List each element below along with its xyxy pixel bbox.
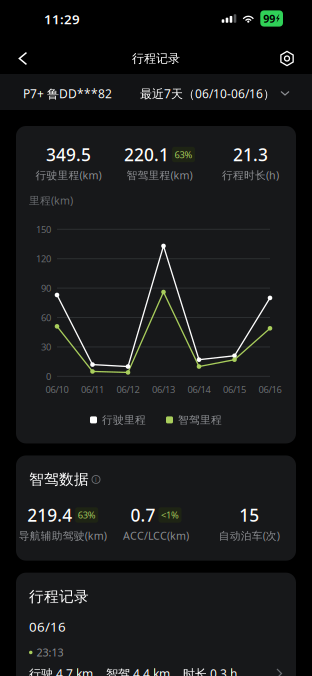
staticText: 行驶里程(km) [35,168,101,182]
staticText: 06/14 [187,383,210,396]
staticText: 06/16 [258,383,281,396]
staticText: 0 [46,370,51,383]
staticText: 63% [78,509,96,521]
staticText: 自动泊车(次) [219,528,280,543]
staticText: 06/15 [223,383,246,396]
staticText: 最近7天（06/10-06/16） [140,85,275,101]
button[interactable]: Settings [267,32,307,77]
staticText: 智驾里程(km) [126,168,192,182]
staticText: 行驶里程 [102,413,146,426]
staticText: 30 [41,341,51,353]
staticText: 导航辅助驾驶(km) [19,528,107,543]
staticText: 21.3 [233,143,268,166]
staticText: 220.1 [124,143,169,166]
button[interactable]: Back [3,32,43,77]
staticText: 60 [41,311,51,324]
staticText: 219.4 [27,503,72,526]
staticText: 06/12 [116,383,139,396]
staticText: ACC/LCC(km) [123,528,189,543]
button[interactable]: 23:13 [16,635,296,676]
staticText: 90 [41,282,51,294]
staticText: 23:13 [36,645,63,660]
staticText: 150 [36,223,51,235]
button[interactable]: P7+ 鲁DD***82 [23,76,112,110]
staticText: 349.5 [46,143,91,166]
staticText: i [95,475,97,484]
staticText: 99 [263,11,275,26]
staticText: 06/16 [29,618,66,635]
staticText: 智驾 4.4 km [106,665,170,676]
staticText: 行程记录 [132,51,180,66]
staticText: 智驾里程 [178,413,222,426]
staticText: 120 [36,252,51,265]
staticText: 行驶 4.7 km [29,665,93,676]
staticText: 06/10 [45,383,68,396]
staticText: 06/11 [81,383,104,396]
staticText: 63% [174,148,192,161]
staticText: 行程时长(h) [222,168,279,182]
staticText: 行程记录 [29,588,89,606]
staticText: 15 [239,503,259,526]
staticText: 时长 0.3 h [183,665,237,676]
staticText: P7+ 鲁DD***82 [23,85,112,101]
staticText: 智驾数据 [29,470,89,488]
button[interactable]: 最近7天（06/10-06/16） [140,76,290,110]
staticText: 06/13 [152,383,175,396]
staticText: <1% [161,509,179,521]
staticText: 里程(km) [29,193,73,207]
staticText: 0.7 [130,503,155,526]
staticText: 11:29 [44,10,80,28]
